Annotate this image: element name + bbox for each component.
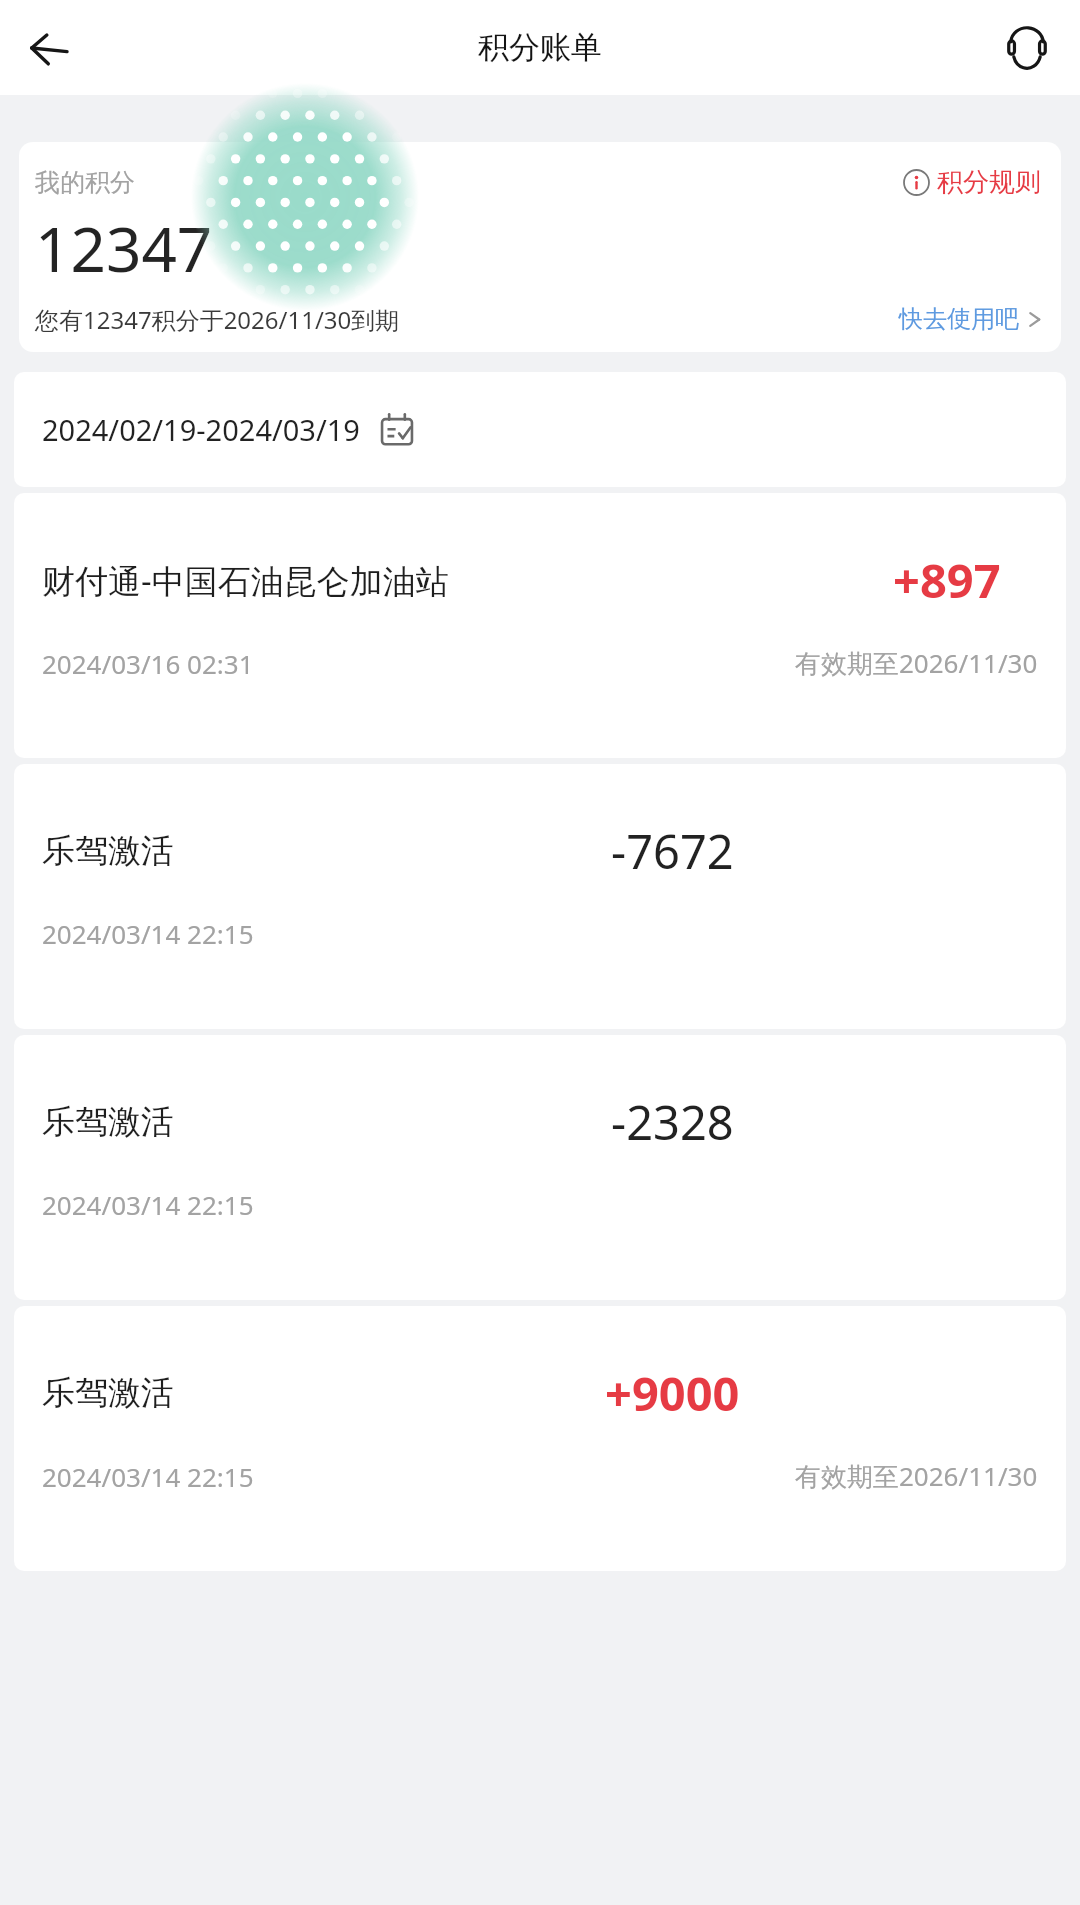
staticText: 有效期至2026/11/30 [795, 645, 1038, 681]
staticText: 您有12347积分于2026/11/30到期 [35, 303, 400, 336]
staticText: 乐驾激活 [42, 1372, 174, 1414]
button[interactable]: 积分规则 [899, 163, 1045, 202]
staticText: 2024/03/14 22:15 [42, 916, 254, 951]
staticText: 我的积分 [35, 167, 135, 198]
staticText: -2328 [611, 1090, 734, 1154]
button[interactable]: 乐驾激活 [14, 1035, 1066, 1300]
staticText: 2024/02/19-2024/03/19 [42, 410, 360, 449]
staticText: 乐驾激活 [42, 830, 174, 872]
staticText: 有效期至2026/11/30 [795, 1458, 1038, 1494]
staticText: 积分账单 [478, 28, 602, 67]
button[interactable]: 2024/02/19-2024/03/19 [14, 372, 1066, 487]
button[interactable]: Back [20, 19, 78, 77]
staticText: 2024/03/14 22:15 [42, 1187, 254, 1222]
staticText: 积分规则 [937, 166, 1041, 199]
staticText: 财付通-中国石油昆仑加油站 [42, 558, 449, 603]
staticText: -7672 [611, 819, 734, 883]
button[interactable]: 快去使用吧 [897, 302, 1045, 336]
staticText: +897 [893, 548, 1001, 612]
staticText: 2024/03/14 22:15 [42, 1459, 254, 1494]
button[interactable]: 乐驾激活 [14, 1306, 1066, 1571]
button[interactable]: 乐驾激活 [14, 764, 1066, 1029]
staticText: 乐驾激活 [42, 1101, 174, 1143]
staticText: +9000 [605, 1361, 740, 1425]
button[interactable]: 财付通-中国石油昆仑加油站 [14, 493, 1066, 758]
button[interactable]: Customer service [996, 17, 1058, 79]
button[interactable]: 我的积分 [19, 142, 1061, 352]
staticText: 12347 [35, 206, 213, 290]
staticText: 快去使用吧 [899, 304, 1019, 334]
staticText: 2024/03/16 02:31 [42, 646, 254, 681]
